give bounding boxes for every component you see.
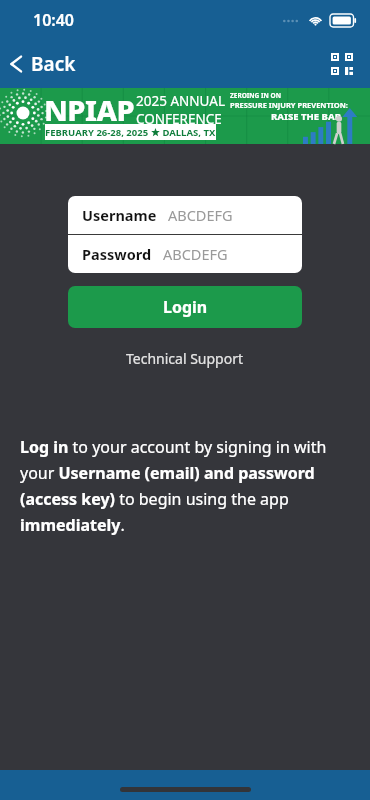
button[interactable]: Technical Support: [116, 346, 254, 371]
staticText: Login: [163, 296, 208, 318]
staticText: Technical Support: [126, 349, 244, 368]
button[interactable]: Username: [68, 196, 302, 234]
staticText: Log in to your account by signing in wit…: [20, 436, 352, 536]
staticText: Password: [82, 244, 152, 264]
staticText: NPIAP: [44, 90, 135, 129]
staticText: ABCDEFG: [163, 244, 228, 264]
staticText: 10:40: [33, 9, 75, 31]
staticText: PRESSURE INJURY PREVENTION:: [230, 100, 348, 110]
button[interactable]: Back: [0, 45, 88, 83]
staticText: CONFERENCE: [136, 110, 222, 128]
staticText: RAISE THE BAR: [271, 110, 342, 123]
staticText: 2025 ANNUAL: [136, 92, 225, 110]
staticText: Username: [82, 205, 157, 225]
staticText: DALLAS, TX: [160, 126, 216, 139]
button[interactable]: Password: [68, 235, 302, 273]
staticText: ABCDEFG: [168, 205, 233, 225]
button[interactable]: Login: [68, 286, 302, 328]
staticText: FEBRUARY 26-28, 2025: [45, 126, 151, 139]
staticText: Back: [31, 51, 76, 77]
button[interactable]: Scan QR code: [326, 48, 358, 80]
staticText: ZEROING IN ON: [230, 91, 281, 100]
